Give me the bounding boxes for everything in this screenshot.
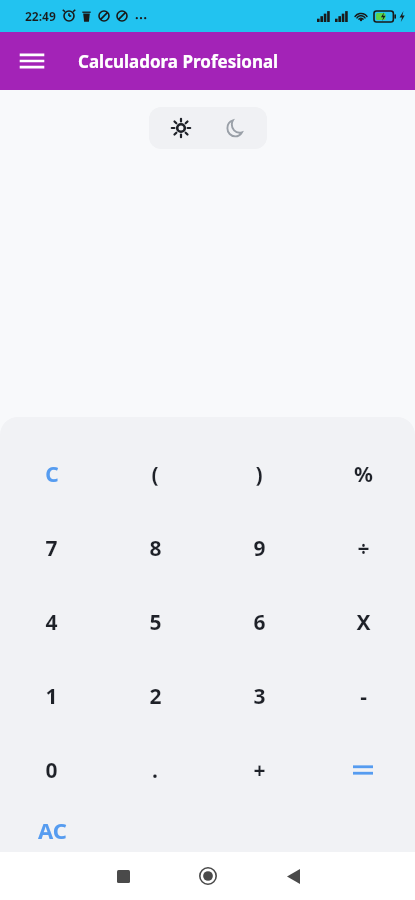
button[interactable]: ): [207, 437, 311, 511]
button[interactable]: (: [103, 437, 207, 511]
button[interactable]: 2: [103, 659, 207, 733]
button[interactable]: Home: [180, 852, 236, 900]
staticText: AC: [38, 815, 67, 845]
staticText: ): [255, 460, 263, 489]
button[interactable]: Light theme: [160, 107, 202, 149]
button[interactable]: 1: [0, 659, 103, 733]
button[interactable]: C: [0, 437, 103, 511]
staticText: 7: [45, 534, 58, 563]
staticText: 0: [45, 756, 58, 785]
button[interactable]: .: [103, 733, 207, 807]
button[interactable]: Back: [265, 852, 321, 900]
staticText: %: [354, 460, 373, 489]
staticText: -: [360, 682, 367, 711]
button[interactable]: 0: [0, 733, 103, 807]
button[interactable]: -: [311, 659, 415, 733]
staticText: 8: [149, 534, 162, 563]
button[interactable]: 8: [103, 511, 207, 585]
staticText: ÷: [357, 534, 370, 563]
staticText: 9: [253, 534, 266, 563]
button[interactable]: 6: [207, 585, 311, 659]
button[interactable]: X: [311, 585, 415, 659]
staticText: X: [356, 608, 371, 637]
button[interactable]: +: [207, 733, 311, 807]
staticText: 22:49: [25, 8, 56, 24]
staticText: 2: [149, 682, 162, 711]
button[interactable]: %: [311, 437, 415, 511]
staticText: C: [45, 460, 59, 489]
button[interactable]: 7: [0, 511, 103, 585]
staticText: 1: [45, 682, 58, 711]
button[interactable]: AC: [0, 807, 104, 852]
button[interactable]: 4: [0, 585, 103, 659]
button[interactable]: 9: [207, 511, 311, 585]
staticText: 5: [149, 608, 162, 637]
button[interactable]: [311, 733, 415, 807]
button[interactable]: Dark theme: [214, 107, 256, 149]
staticText: Calculadora Profesional: [78, 50, 279, 73]
staticText: (: [151, 460, 159, 489]
staticText: .: [152, 756, 158, 785]
staticText: 3: [253, 682, 266, 711]
staticText: 6: [253, 608, 266, 637]
button[interactable]: ÷: [311, 511, 415, 585]
button[interactable]: Menu: [12, 41, 52, 81]
button[interactable]: 5: [103, 585, 207, 659]
staticText: 4: [45, 608, 58, 637]
staticText: +: [253, 756, 266, 785]
button[interactable]: 3: [207, 659, 311, 733]
button[interactable]: Recents: [95, 852, 151, 900]
